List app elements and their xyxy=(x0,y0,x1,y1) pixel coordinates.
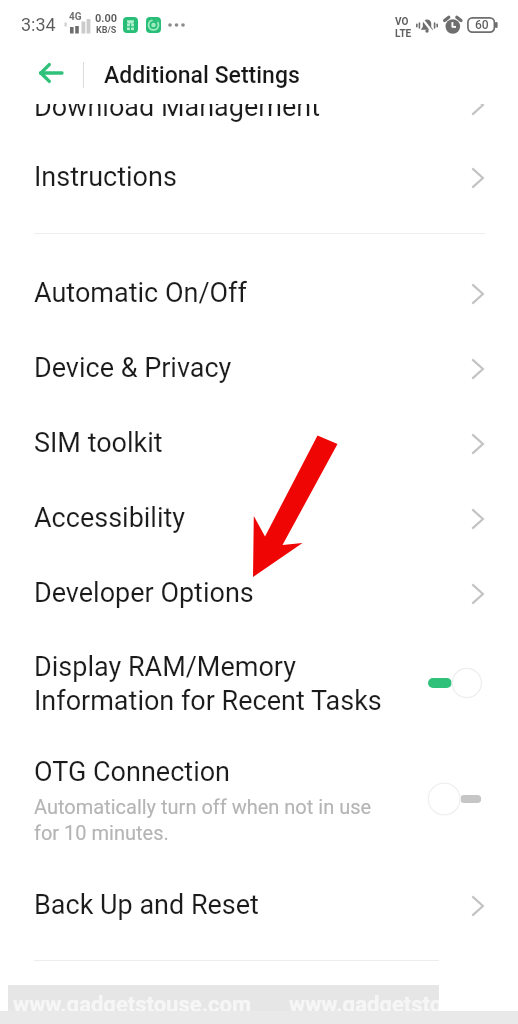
button[interactable]: Download Management xyxy=(0,94,518,138)
button[interactable]: Back xyxy=(31,53,71,93)
staticText: LTE xyxy=(395,28,412,40)
staticText: SIM toolkit xyxy=(34,427,163,459)
staticText: Back Up and Reset xyxy=(34,889,259,921)
staticText: Automatic On/Off xyxy=(34,277,247,309)
staticText: Additional Settings xyxy=(104,62,300,89)
staticText: Accessibility xyxy=(34,502,186,534)
staticText: 60 xyxy=(475,18,489,32)
staticText: www.gadgetsto xyxy=(289,992,439,1018)
staticText: Automatically turn off when not in use f… xyxy=(34,795,372,844)
staticText: Display RAM/Memory Information for Recen… xyxy=(34,651,382,717)
staticText: 3:34 xyxy=(21,14,56,35)
button[interactable]: Instructions xyxy=(0,140,518,214)
button[interactable]: Accessibility xyxy=(0,481,518,555)
staticText: Device & Privacy xyxy=(34,352,232,384)
staticText: VO xyxy=(395,16,409,28)
button[interactable]: Back Up and Reset xyxy=(0,868,518,942)
button[interactable]: Display RAM/Memory Information for Recen… xyxy=(0,629,518,719)
button[interactable]: SIM toolkit xyxy=(0,406,518,480)
staticText: Instructions xyxy=(34,161,177,193)
staticText: Download Management xyxy=(34,91,320,123)
staticText: www.gadgetstouse.com xyxy=(13,992,252,1018)
button[interactable]: OTG Connection xyxy=(0,734,518,844)
button[interactable]: Device & Privacy xyxy=(0,331,518,405)
button[interactable]: Switch on xyxy=(420,663,484,703)
button[interactable]: Automatic On/Off xyxy=(0,256,518,330)
staticText: KB/S xyxy=(96,25,117,36)
staticText: 4G xyxy=(69,11,82,23)
button[interactable]: Developer Options xyxy=(0,556,518,630)
staticText: 0.00 xyxy=(95,12,118,25)
button[interactable]: Switch off xyxy=(427,779,491,819)
staticText: OTG Connection xyxy=(34,756,231,788)
staticText: Developer Options xyxy=(34,577,254,609)
